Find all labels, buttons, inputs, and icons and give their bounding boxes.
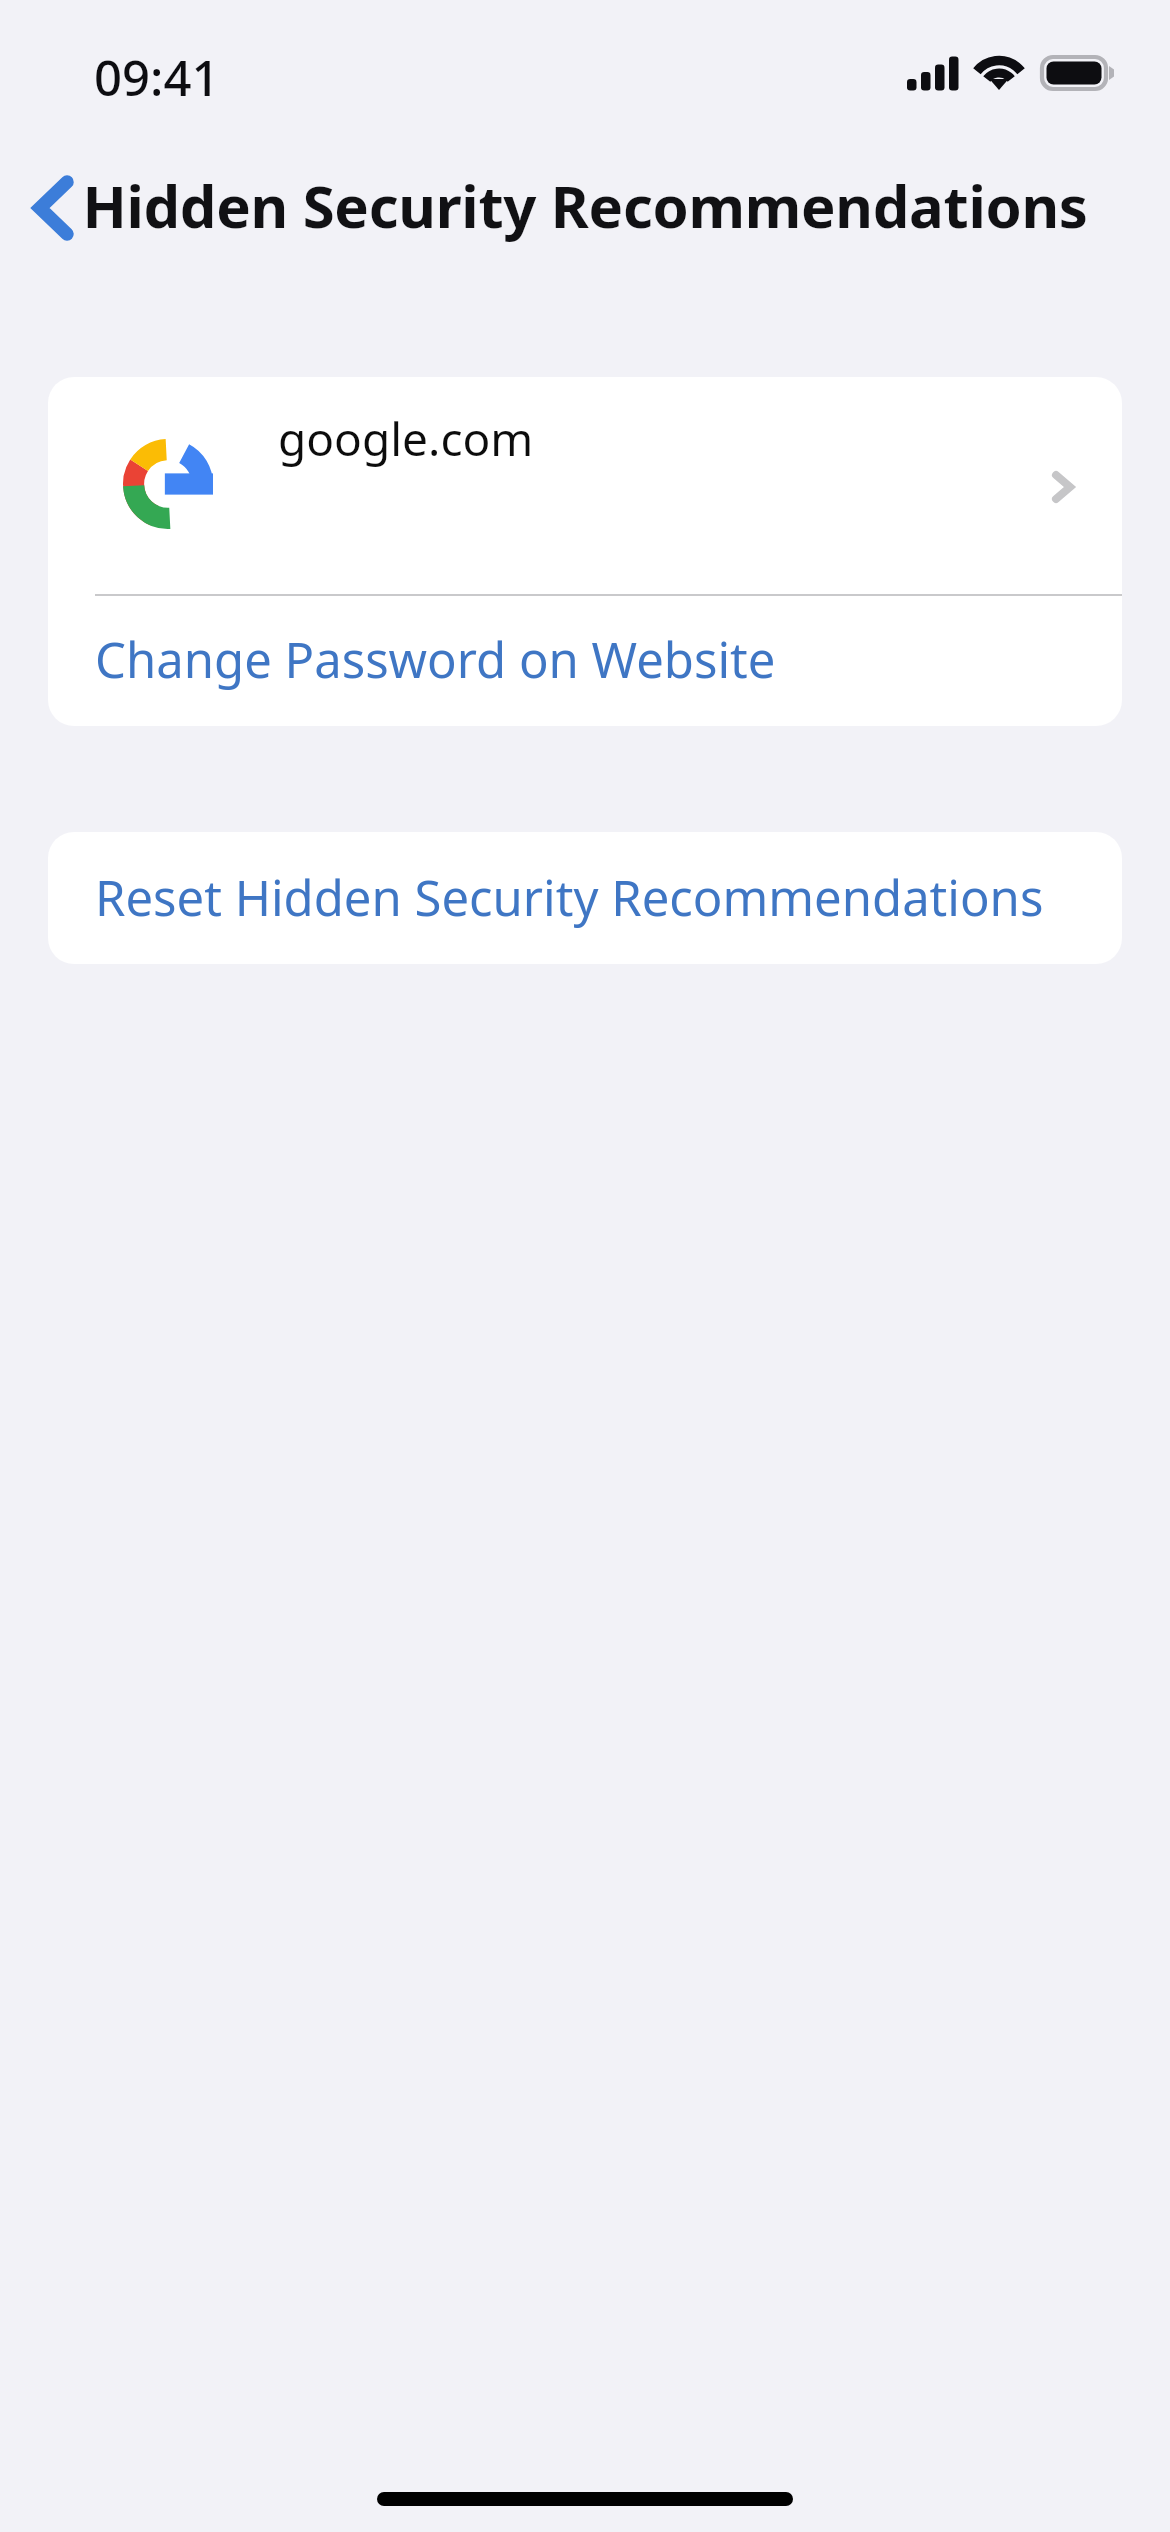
staticText: 09:41: [94, 44, 220, 111]
button[interactable]: Back: [8, 162, 98, 254]
button[interactable]: google.com: [48, 377, 1122, 594]
staticText: google.com: [278, 407, 534, 470]
button[interactable]: Reset Hidden Security Recommendations: [48, 832, 1122, 964]
staticText: Hidden Security Recommendations: [82, 166, 1088, 245]
staticText: Change Password on Website: [95, 626, 776, 693]
button[interactable]: Change Password on Website: [48, 596, 1122, 726]
staticText: Reset Hidden Security Recommendations: [95, 864, 1044, 931]
